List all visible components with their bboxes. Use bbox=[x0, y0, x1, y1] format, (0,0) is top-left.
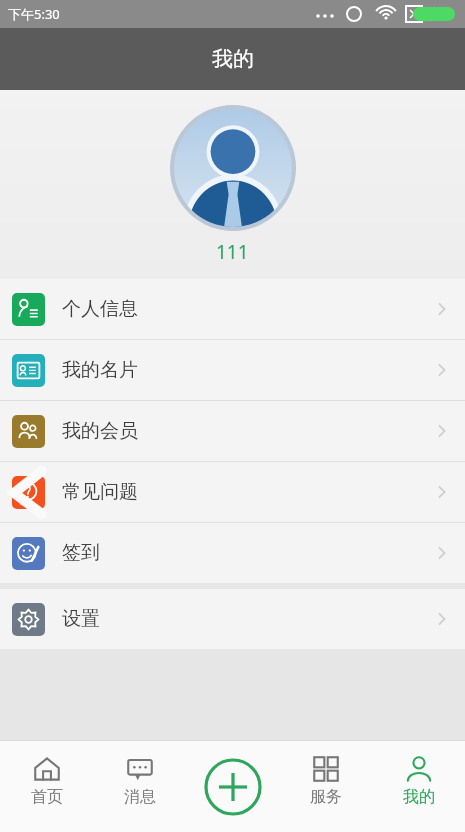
staticText: 我的会员 bbox=[62, 419, 138, 443]
button[interactable]: Add bbox=[186, 741, 279, 832]
button[interactable]: 设置 bbox=[0, 589, 465, 649]
staticText: 首页 bbox=[31, 787, 63, 807]
button[interactable]: 我的名片 bbox=[0, 340, 465, 400]
button[interactable]: 我的 bbox=[372, 741, 465, 832]
staticText: 个人信息 bbox=[62, 297, 138, 321]
button[interactable]: 服务 bbox=[279, 741, 372, 832]
staticText: 常见问题 bbox=[62, 480, 138, 504]
staticText: 设置 bbox=[62, 607, 100, 631]
button[interactable]: 首页 bbox=[0, 741, 93, 832]
button[interactable]: 消息 bbox=[93, 741, 186, 832]
staticText: 我的名片 bbox=[62, 358, 138, 382]
staticText: 消息 bbox=[124, 787, 156, 807]
staticText: 111 bbox=[216, 239, 249, 265]
button[interactable]: 签到 bbox=[0, 523, 465, 583]
button[interactable]: 个人信息 bbox=[0, 279, 465, 339]
staticText: 签到 bbox=[62, 541, 100, 565]
staticText: 我的 bbox=[212, 46, 254, 72]
staticText: 我的 bbox=[403, 787, 435, 807]
staticText: 下午5:30 bbox=[8, 5, 60, 23]
button[interactable]: 我的会员 bbox=[0, 401, 465, 461]
staticText: 服务 bbox=[310, 787, 342, 807]
button[interactable]: 常见问题 bbox=[0, 462, 465, 522]
